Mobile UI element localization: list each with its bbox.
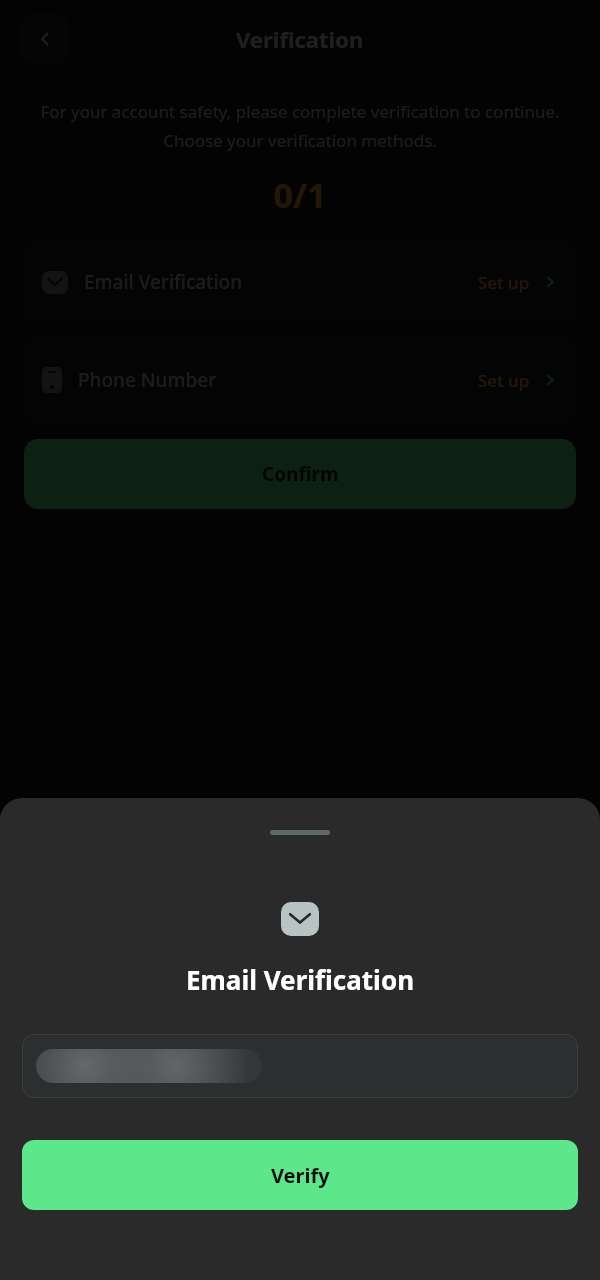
staticText: Email Verification (84, 269, 243, 295)
staticText: For your account safety, please complete… (38, 100, 562, 152)
staticText: Verification (236, 24, 364, 54)
staticText: Set up (478, 369, 530, 392)
staticText: 0/1 (0, 172, 600, 218)
staticText: Set up (478, 271, 530, 294)
button[interactable]: Phone Number (24, 338, 576, 422)
staticText: Email Verification (0, 962, 600, 997)
staticText: Confirm (262, 461, 339, 487)
button[interactable] (22, 1034, 578, 1098)
staticText: Verify (271, 1162, 330, 1189)
button[interactable]: Email Verification (24, 240, 576, 324)
button[interactable]: Verify (22, 1140, 578, 1210)
button[interactable]: Confirm (24, 439, 576, 509)
staticText: Phone Number (78, 367, 217, 393)
